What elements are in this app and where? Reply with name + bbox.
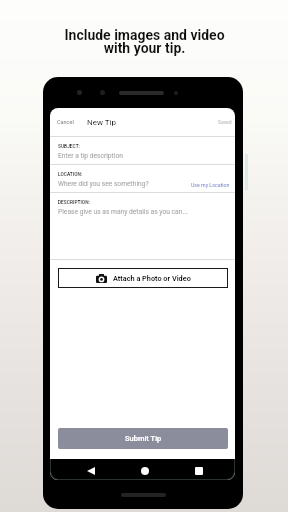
button[interactable]: Recents [192,464,206,478]
button[interactable]: Cancel [57,119,74,125]
button[interactable]: Saved [218,119,232,125]
staticText: Where did you see something? [58,180,149,188]
button[interactable]: Submit Tip [58,428,228,449]
staticText: SUBJECT: [58,144,80,150]
button[interactable]: Back [84,464,98,478]
staticText: Submit Tip [125,434,162,443]
staticText: Attach a Photo or Video [113,274,191,283]
staticText: Include images and video with your tip. [64,27,225,57]
staticText: New Tip [87,118,116,127]
staticText: Please give us as many details as you ca… [58,208,188,216]
button[interactable]: Attach a Photo or Video [58,268,228,288]
button[interactable]: Use my Location [191,182,230,188]
staticText: LOCATION: [58,172,83,178]
staticText: DESCRIPTION: [58,200,90,206]
staticText: Enter a tip description [58,152,123,160]
button[interactable]: Cancel [50,108,235,136]
button[interactable]: Home [138,464,152,478]
